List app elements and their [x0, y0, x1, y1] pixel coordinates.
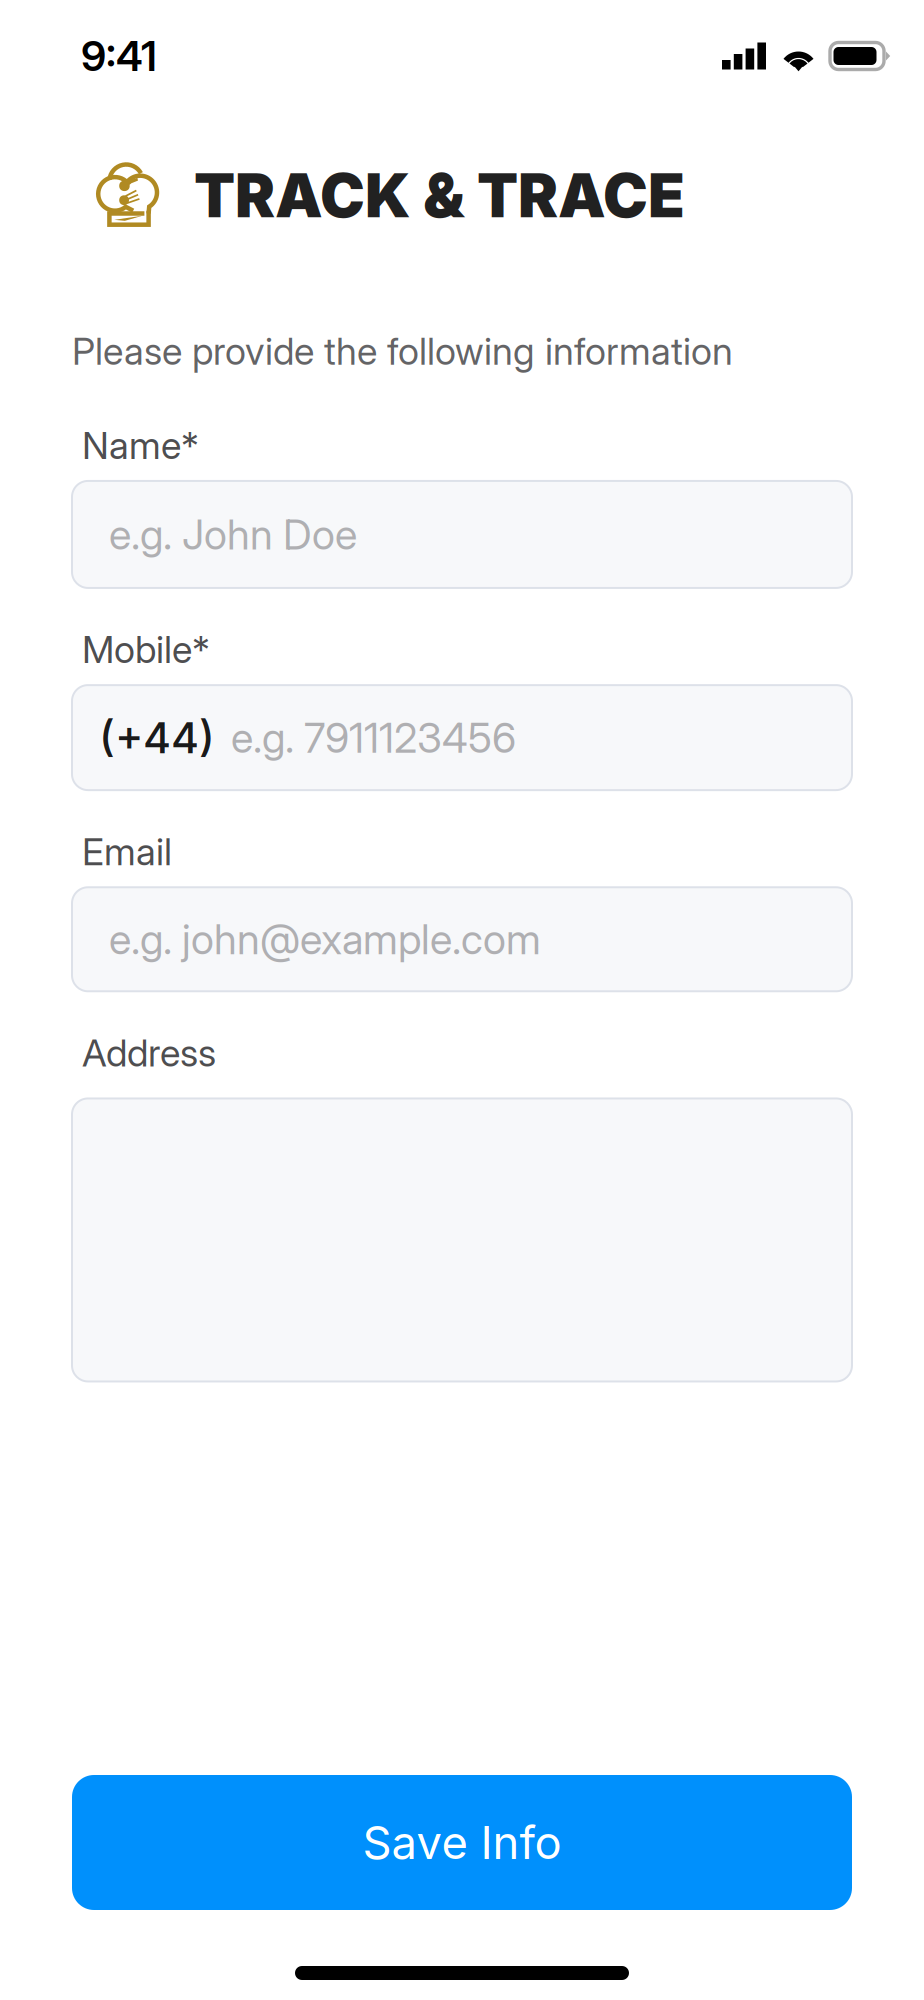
staticText: Please provide the following information [72, 329, 733, 374]
staticText: Email [82, 829, 172, 874]
staticText: e.g. John Doe [109, 509, 357, 559]
button[interactable]: Save Info [72, 1775, 852, 1910]
staticText: e.g. john@example.com [109, 914, 541, 964]
staticText: Address [82, 1030, 216, 1075]
button[interactable]: e.g. john@example.com [72, 887, 852, 991]
staticText: (+44) [99, 712, 215, 763]
staticText: TRACK & TRACE [194, 159, 685, 232]
staticText: 9:41 [81, 31, 157, 81]
staticText: Mobile* [82, 627, 210, 672]
staticText: Save Info [362, 1815, 561, 1870]
staticText: Name* [82, 423, 199, 468]
button[interactable]: e.g. John Doe [72, 481, 852, 588]
button[interactable]: (+44) [72, 685, 852, 790]
staticText: e.g. 7911123456 [231, 713, 516, 763]
